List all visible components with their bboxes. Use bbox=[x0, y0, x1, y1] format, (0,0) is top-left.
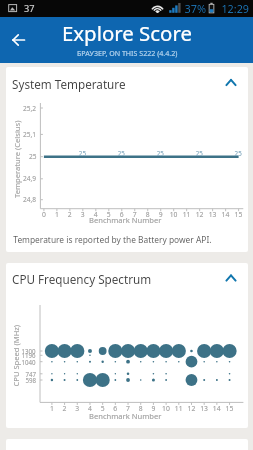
staticText: CPU Frequency Spectrum bbox=[12, 271, 152, 287]
button[interactable]: System Temperature bbox=[6, 67, 248, 101]
staticText: System Temperature bbox=[12, 76, 126, 92]
staticText: Explore Score bbox=[62, 19, 192, 47]
button[interactable]: Navigate up bbox=[3, 25, 33, 55]
button[interactable]: CPU Frequency Spectrum bbox=[6, 263, 248, 294]
staticText: БРАУЗЕР, ON THIS S222 (4.4.2) bbox=[77, 48, 178, 58]
